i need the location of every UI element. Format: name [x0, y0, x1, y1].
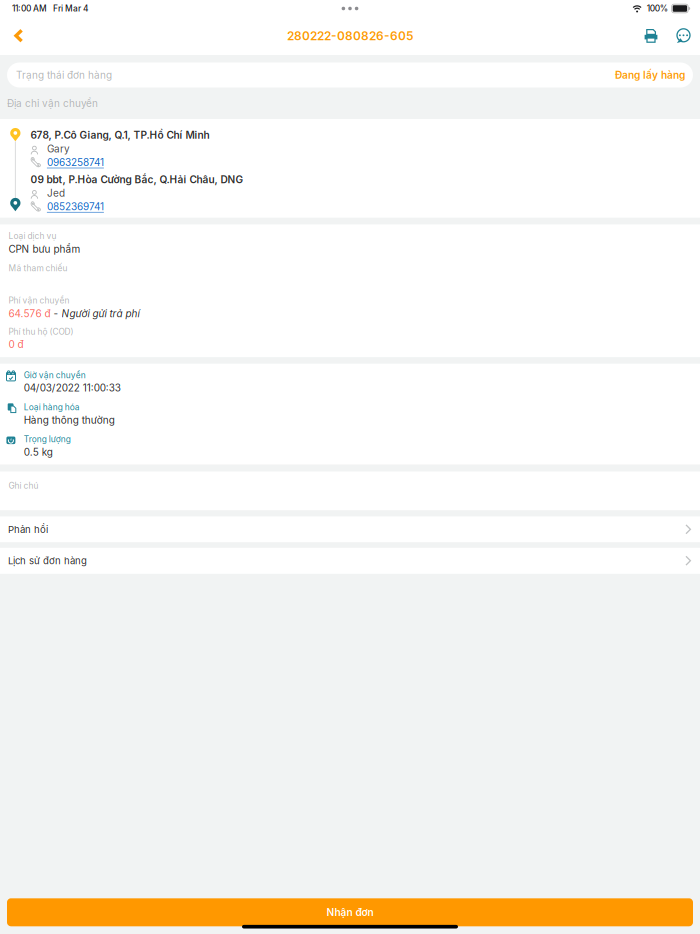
staticText: 100%	[643, 3, 672, 14]
staticText: Người gửi trả phí	[61, 307, 139, 320]
button[interactable]: Back	[3, 17, 35, 55]
staticText: Loại hàng hóa	[24, 402, 80, 412]
staticText: 04/03/2022 11:00:33	[24, 382, 121, 394]
staticText: Loại dịch vụ	[8, 231, 56, 241]
button[interactable]: Messages	[667, 17, 700, 55]
staticText: CPN bưu phẩm	[8, 243, 80, 255]
staticText: 11:00 AM	[12, 3, 47, 14]
staticText: Phí vận chuyển	[8, 295, 69, 305]
staticText: 0852369741	[47, 201, 104, 213]
button[interactable]: Print	[635, 17, 667, 55]
staticText: Gary	[47, 143, 70, 155]
button[interactable]: Lịch sử đơn hàng	[0, 548, 700, 574]
button[interactable]: Nhận đơn	[7, 898, 693, 926]
staticText: Trạng thái đơn hàng	[16, 69, 112, 81]
staticText: -	[50, 307, 61, 320]
staticText: Hàng thông thường	[24, 414, 115, 426]
staticText: Địa chỉ vận chuyển	[7, 97, 98, 109]
staticText: 0963258741	[47, 156, 104, 168]
staticText: 64.576 đ	[8, 307, 50, 320]
staticText: 0.5 kg	[24, 446, 53, 458]
staticText: Jed	[47, 187, 65, 199]
staticText: Phí thu hộ (COD)	[8, 327, 73, 337]
staticText: Giờ vận chuyển	[24, 370, 86, 380]
staticText: Ghi chú	[8, 480, 38, 491]
button[interactable]: Phản hồi	[0, 516, 700, 542]
staticText: Đang lấy hàng	[615, 69, 685, 81]
staticText: 280222-080826-605	[287, 29, 413, 43]
staticText: Mã tham chiếu	[8, 263, 67, 273]
staticText: Lịch sử đơn hàng	[8, 555, 87, 567]
button[interactable]: Trạng thái đơn hàng	[7, 62, 693, 87]
staticText: 678, P.Cô Giang, Q.1, TP.Hồ Chí Minh	[30, 129, 209, 141]
staticText: Fri Mar 4	[47, 3, 89, 14]
staticText: Phản hồi	[8, 524, 48, 535]
staticText: Nhận đơn	[326, 906, 373, 918]
staticText: Trọng lượng	[24, 434, 71, 444]
staticText: 09 bbt, P.Hòa Cường Bắc, Q.Hải Châu, DNG	[30, 173, 243, 186]
staticText: 0 đ	[8, 338, 23, 350]
